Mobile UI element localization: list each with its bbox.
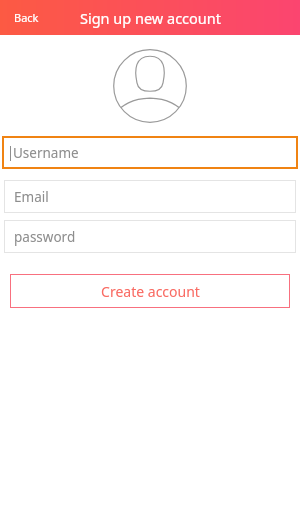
- button[interactable]: Back: [8, 6, 45, 29]
- staticText: Sign up new account: [80, 8, 221, 28]
- staticText: Username: [13, 144, 79, 162]
- staticText: password: [14, 228, 76, 246]
- button[interactable]: Email: [4, 180, 296, 213]
- button[interactable]: Create account: [10, 274, 290, 308]
- button[interactable]: Profile photo: [113, 49, 187, 123]
- button[interactable]: password: [4, 220, 296, 253]
- staticText: Back: [14, 10, 39, 25]
- button[interactable]: Username: [2, 136, 298, 169]
- staticText: Create account: [101, 282, 200, 301]
- staticText: Email: [14, 188, 49, 206]
